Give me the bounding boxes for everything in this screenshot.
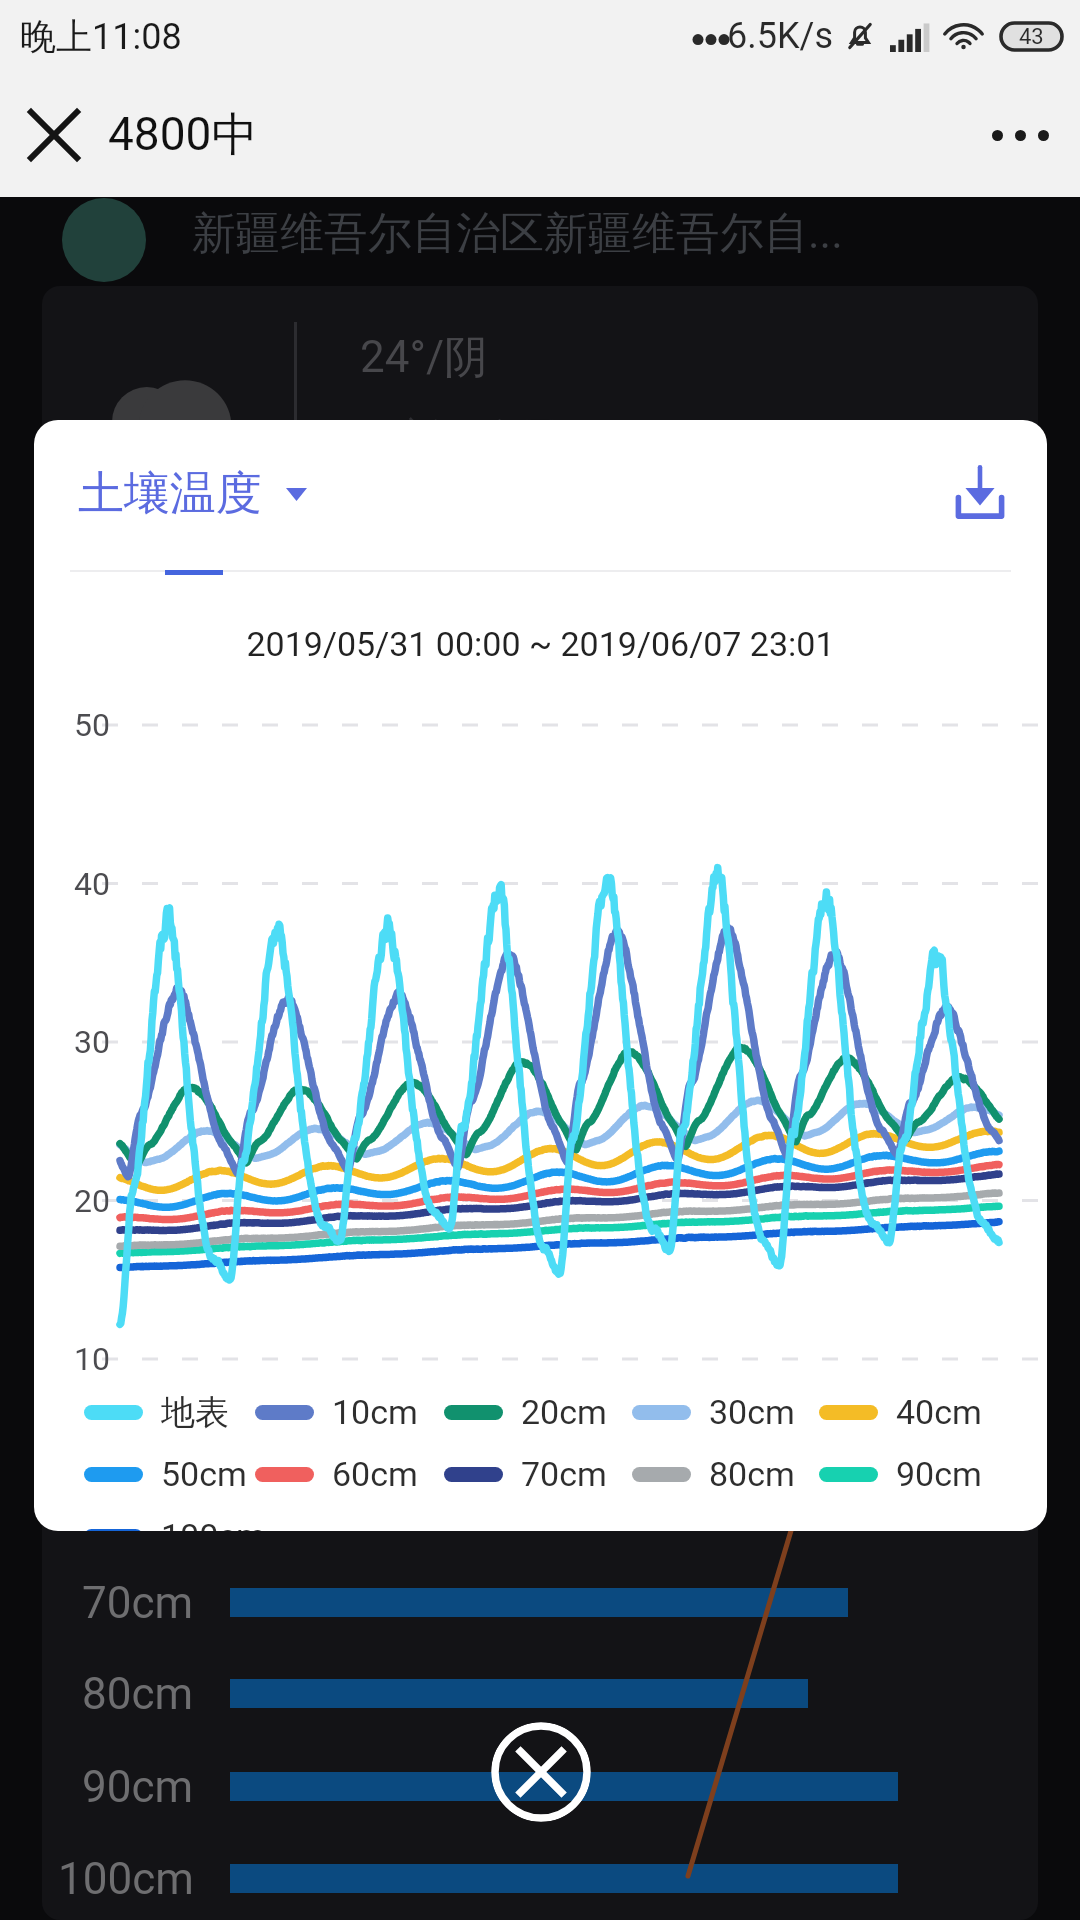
staticText: 地表: [161, 1391, 229, 1434]
button[interactable]: 40cm: [819, 1384, 982, 1440]
staticText: 70cm: [82, 1577, 194, 1629]
staticText: 2019/05/31 00:00 ~ 2019/06/07 23:01: [34, 624, 1047, 664]
button[interactable]: 地表: [84, 1384, 229, 1440]
staticText: 40: [74, 865, 110, 903]
staticText: 80cm: [82, 1668, 194, 1720]
button[interactable]: Close: [0, 80, 108, 190]
staticText: 24°/阴: [360, 330, 489, 385]
staticText: 更新：今天14:34: [360, 412, 660, 462]
staticText: 70cm: [521, 1454, 607, 1494]
button[interactable]: More options: [960, 80, 1080, 190]
button[interactable]: 土壤温度: [78, 448, 307, 540]
staticText: 晚上11:08: [20, 14, 182, 59]
staticText: 10: [74, 1340, 110, 1378]
button[interactable]: 60cm: [255, 1446, 418, 1502]
button[interactable]: 30cm: [632, 1384, 795, 1440]
button[interactable]: 80cm: [632, 1446, 795, 1502]
staticText: 4800中: [108, 106, 258, 164]
staticText: 20: [74, 1182, 110, 1220]
staticText: 90cm: [896, 1454, 982, 1494]
button[interactable]: Download: [925, 437, 1035, 547]
staticText: 土壤温度: [78, 465, 262, 523]
staticText: 100cm: [58, 1853, 194, 1905]
button[interactable]: 70cm: [444, 1446, 607, 1502]
button[interactable]: 100cm: [84, 1508, 266, 1531]
staticText: 新疆维吾尔自治区新疆维吾尔自...: [192, 206, 843, 261]
staticText: 30cm: [709, 1392, 795, 1432]
staticText: 6.5K/s: [727, 15, 833, 57]
staticText: 50: [74, 706, 110, 744]
staticText: 90cm: [82, 1761, 194, 1813]
button[interactable]: 20cm: [444, 1384, 607, 1440]
button[interactable]: Close dialog: [491, 1722, 591, 1822]
staticText: 50cm: [161, 1454, 247, 1494]
staticText: 40cm: [896, 1392, 982, 1432]
staticText: 20cm: [521, 1392, 607, 1432]
staticText: 60cm: [332, 1454, 418, 1494]
staticText: 30: [74, 1023, 110, 1061]
button[interactable]: 50cm: [84, 1446, 247, 1502]
staticText: 10cm: [332, 1392, 418, 1432]
staticText: 43: [1019, 24, 1044, 50]
staticText: 80cm: [709, 1454, 795, 1494]
button[interactable]: 10cm: [255, 1384, 418, 1440]
button[interactable]: 90cm: [819, 1446, 982, 1502]
staticText: 100cm: [161, 1516, 266, 1531]
